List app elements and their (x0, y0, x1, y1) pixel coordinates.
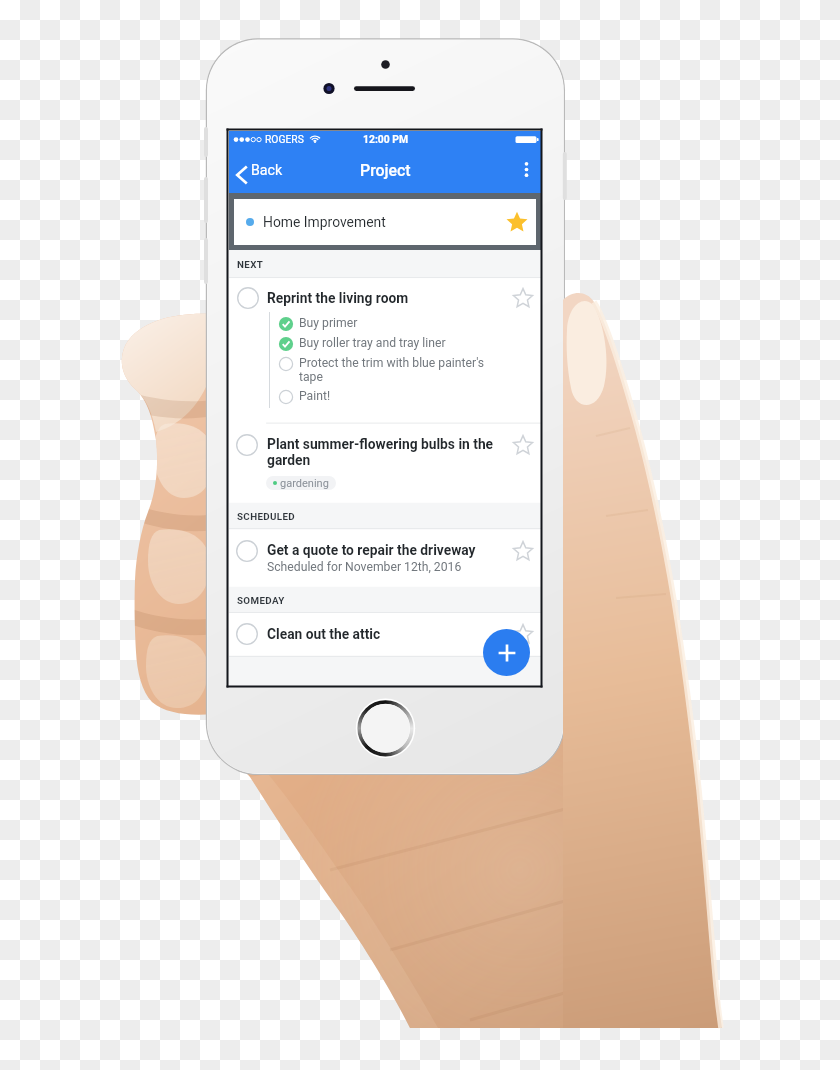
button[interactable]: Star task (508, 619, 538, 649)
staticText: Paint! (299, 389, 331, 403)
staticText: Home Improvement (263, 214, 386, 230)
button[interactable]: Favourite project (500, 205, 534, 239)
staticText: Buy primer (299, 316, 358, 330)
button[interactable]: Back (233, 156, 292, 193)
staticText: gardening (280, 477, 329, 490)
button[interactable] (229, 530, 541, 587)
staticText: ROGERS (265, 133, 304, 145)
button[interactable]: Home Improvement (234, 199, 536, 245)
button[interactable] (229, 278, 541, 423)
staticText: Back (251, 162, 283, 179)
staticText: NEXT (237, 259, 264, 270)
button[interactable]: Star task (508, 430, 538, 460)
staticText: Reprint the living room (267, 290, 409, 306)
button[interactable] (229, 423, 541, 503)
button[interactable]: Star task (508, 536, 538, 566)
button[interactable]: More options (512, 155, 540, 183)
staticText: 12:00 PM (363, 133, 409, 145)
staticText: Clean out the attic (267, 626, 381, 642)
staticText: Scheduled for November 12th, 2016 (267, 560, 462, 574)
button[interactable]: Add task (483, 629, 530, 676)
staticText: Project (360, 161, 411, 180)
staticText: Protect the trim with blue painter's (299, 356, 485, 370)
staticText: SCHEDULED (237, 511, 296, 522)
staticText: Get a quote to repair the driveway (267, 542, 476, 558)
button[interactable]: Star task (508, 283, 538, 313)
staticText: Buy roller tray and tray liner (299, 336, 446, 350)
button[interactable] (229, 613, 541, 656)
staticText: Plant summer-flowering bulbs in the gard… (267, 436, 494, 469)
staticText: SOMEDAY (237, 595, 285, 606)
staticText: tape (299, 370, 323, 384)
